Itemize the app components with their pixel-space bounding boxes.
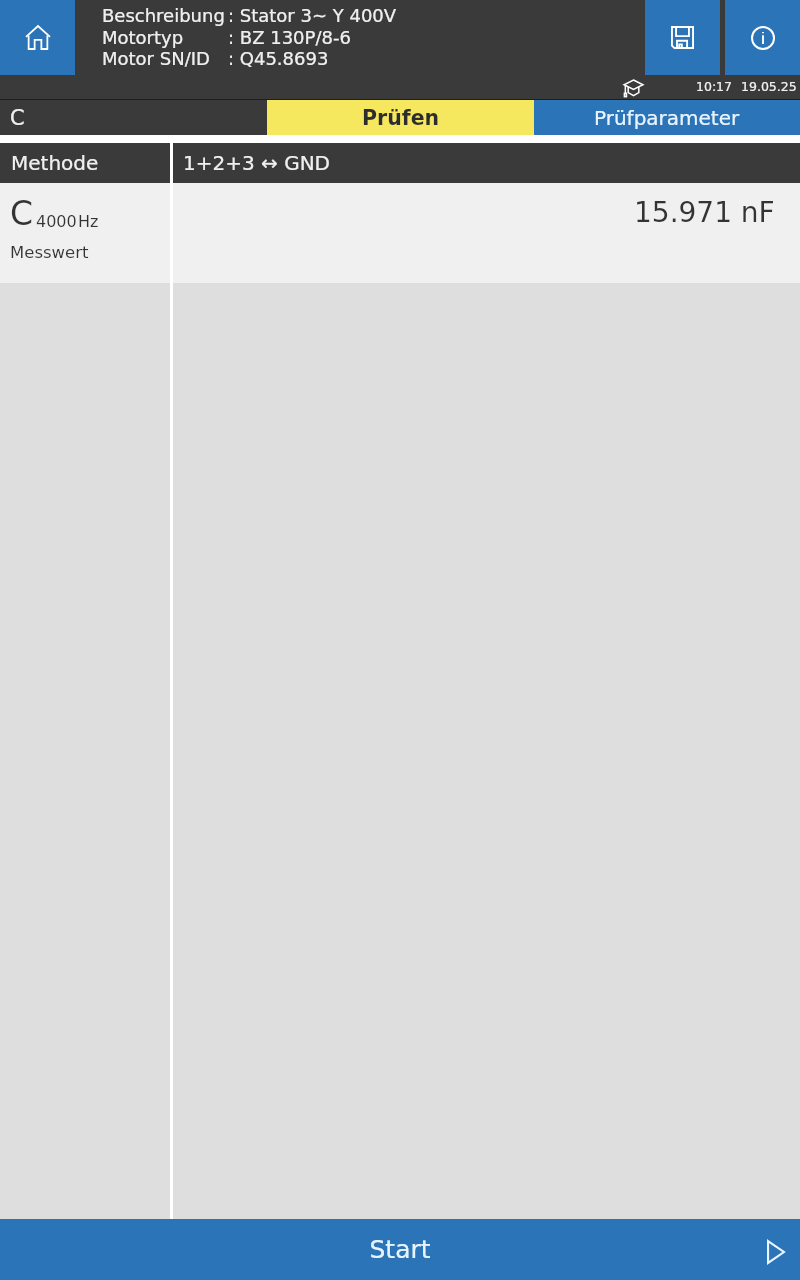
staticText: Motor SN/ID xyxy=(102,48,210,69)
staticText: 15.971 nF xyxy=(634,196,775,229)
button[interactable]: Prüfparameter xyxy=(534,100,800,135)
staticText: Prüfparameter xyxy=(594,106,740,129)
button[interactable]: Start xyxy=(0,1219,800,1280)
button[interactable]: C xyxy=(0,183,800,283)
staticText: : Stator 3~ Y 400V xyxy=(228,5,397,26)
staticText: 19.05.25 xyxy=(741,79,797,94)
button[interactable]: Start measurement xyxy=(767,1240,785,1264)
button[interactable]: Prüfen xyxy=(267,100,534,135)
staticText: Messwert xyxy=(10,243,89,262)
staticText: 10:17 xyxy=(696,79,733,94)
button[interactable]: Home xyxy=(0,0,75,75)
staticText: 4000 xyxy=(36,212,77,231)
staticText: C xyxy=(10,106,25,130)
staticText: 1+2+3 ↔ GND xyxy=(183,151,331,174)
staticText: Hz xyxy=(78,212,99,231)
button[interactable]: Info xyxy=(725,0,800,75)
staticText: C xyxy=(10,194,34,232)
staticText: Prüfen xyxy=(362,106,440,130)
staticText: Motortyp xyxy=(102,27,184,48)
staticText: Beschreibung xyxy=(102,5,225,26)
staticText: Start xyxy=(369,1235,431,1264)
staticText: Methode xyxy=(11,151,99,174)
button[interactable]: Save xyxy=(645,0,720,75)
staticText: : Q45.8693 xyxy=(228,48,329,69)
staticText: : BZ 130P/8-6 xyxy=(228,27,351,48)
